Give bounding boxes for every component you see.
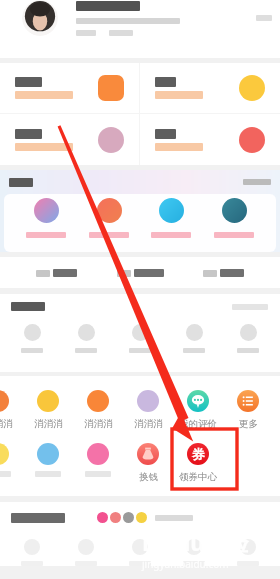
button[interactable]: 我的评价 [173,390,223,430]
button[interactable] [199,265,248,281]
button[interactable]: 更多 [223,390,273,430]
button[interactable]: Shortcut [0,443,23,477]
button[interactable]: 消消消 [23,390,73,430]
button[interactable] [140,114,280,165]
staticText: 消消消 [84,418,113,430]
staticText: 我的评价 [179,418,217,430]
staticText: 消消消 [134,418,163,430]
staticText: 换钱 [139,471,158,483]
button[interactable] [214,194,254,238]
button[interactable] [118,324,162,353]
button[interactable] [26,194,66,238]
button[interactable] [89,194,129,238]
button[interactable] [32,265,81,281]
button[interactable] [226,539,270,566]
button[interactable] [10,539,54,566]
button[interactable]: 消消消 [0,390,23,430]
button[interactable] [140,63,280,113]
button[interactable]: Shortcut [73,443,123,477]
button[interactable] [0,0,280,58]
staticText: 券 [192,446,205,462]
button[interactable] [64,324,108,353]
button[interactable]: 换钱 [123,443,173,483]
button[interactable] [172,324,216,353]
staticText: Baidu经验 [142,527,249,557]
button[interactable] [118,539,162,566]
button[interactable] [0,114,139,165]
button[interactable] [226,324,270,353]
button[interactable] [172,539,216,566]
button[interactable]: 领券中心 [173,443,223,483]
staticText: 消消消 [0,418,13,430]
button[interactable]: Shortcut [23,443,73,477]
staticText: 领券中心 [179,471,217,483]
button[interactable] [64,539,108,566]
staticText: 更多 [239,418,258,430]
button[interactable] [151,194,191,238]
staticText: 消消消 [34,418,63,430]
button[interactable] [113,265,168,281]
button[interactable]: 消消消 [123,390,173,430]
button[interactable] [0,63,139,113]
button[interactable] [10,324,54,353]
staticText: jingyan.baidu.com [142,557,229,571]
button[interactable]: 消消消 [73,390,123,430]
